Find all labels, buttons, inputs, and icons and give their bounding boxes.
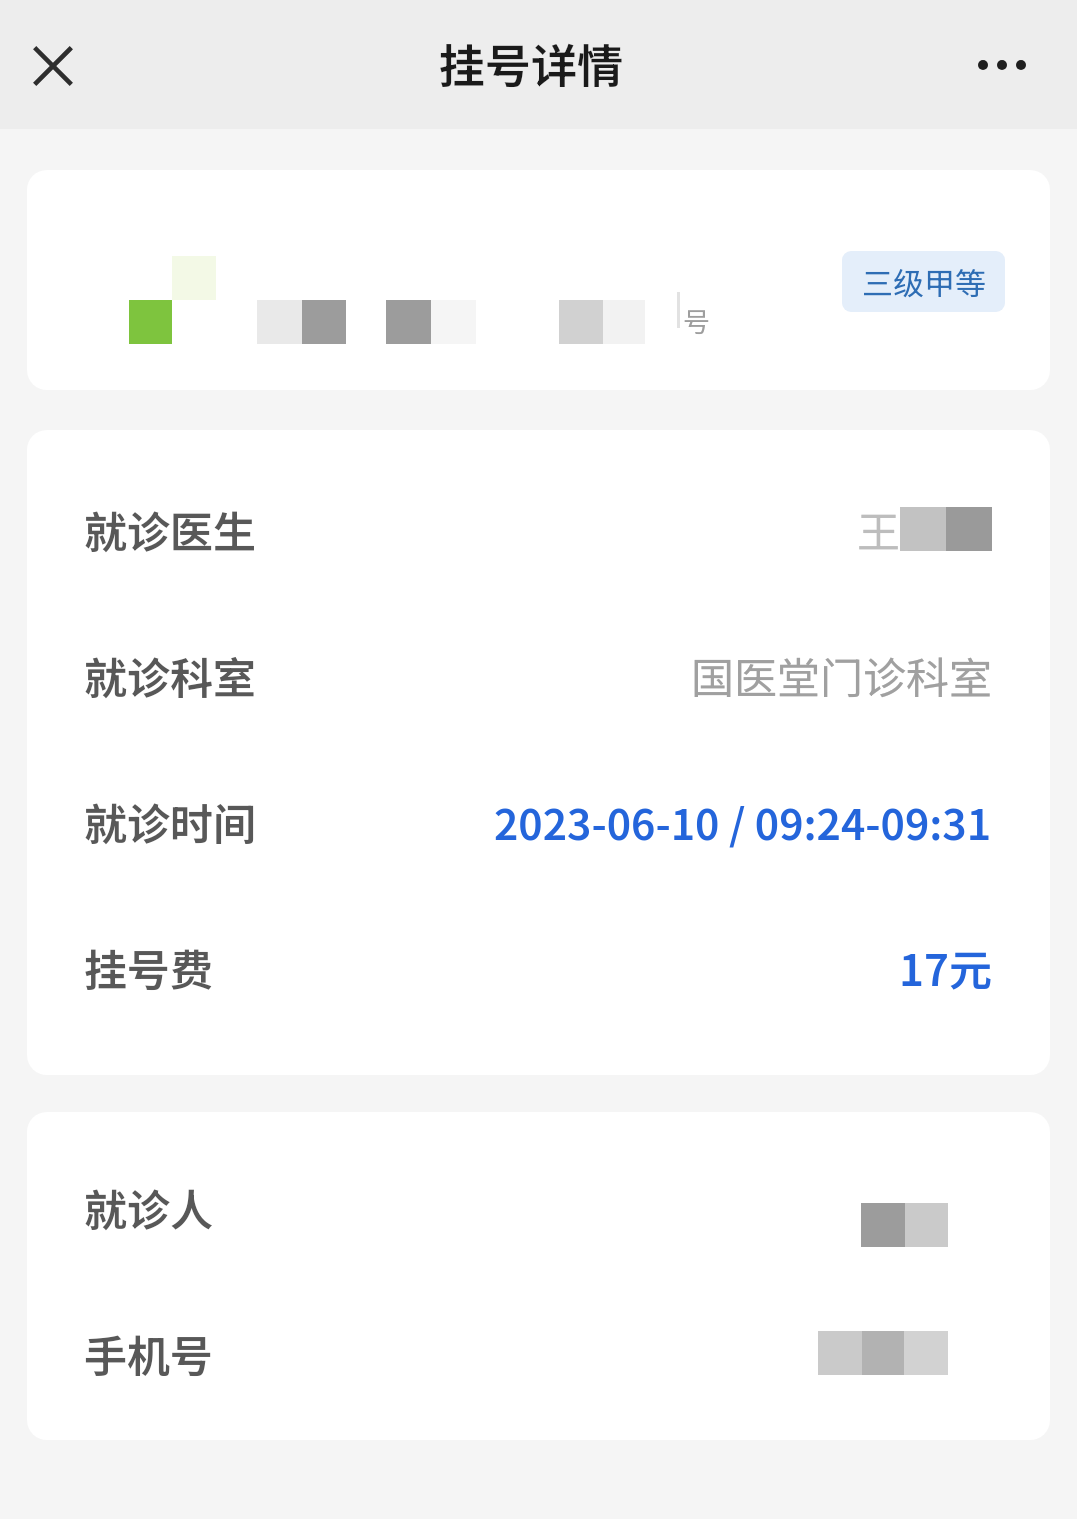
- staticText: 就诊科室: [84, 644, 256, 706]
- button[interactable]: 三级甲等: [842, 251, 1005, 312]
- staticText: 手机号: [84, 1322, 213, 1384]
- button[interactable]: 挂号费: [27, 894, 1050, 1040]
- staticText: 挂号详情: [439, 30, 623, 97]
- staticText: 就诊人: [84, 1176, 213, 1238]
- staticText: 2023-06-10 / 09:24-09:31: [494, 791, 992, 852]
- staticText: 就诊时间: [84, 790, 256, 852]
- button[interactable]: 就诊医生: [27, 456, 1050, 602]
- button[interactable]: 就诊人: [27, 1134, 1050, 1280]
- staticText: 国医堂门诊科室: [691, 644, 992, 706]
- button[interactable]: 号: [27, 170, 1050, 390]
- button[interactable]: More options: [959, 25, 1044, 105]
- staticText: 王: [857, 498, 900, 560]
- staticText: 号: [683, 301, 710, 340]
- button[interactable]: 就诊时间: [27, 748, 1050, 894]
- button[interactable]: 手机号: [27, 1280, 1050, 1426]
- staticText: 挂号费: [84, 936, 213, 998]
- staticText: 就诊医生: [84, 498, 256, 560]
- staticText: 17元: [899, 936, 992, 998]
- button[interactable]: Close: [10, 23, 95, 108]
- button[interactable]: 就诊科室: [27, 602, 1050, 748]
- staticText: 三级甲等: [862, 259, 986, 304]
